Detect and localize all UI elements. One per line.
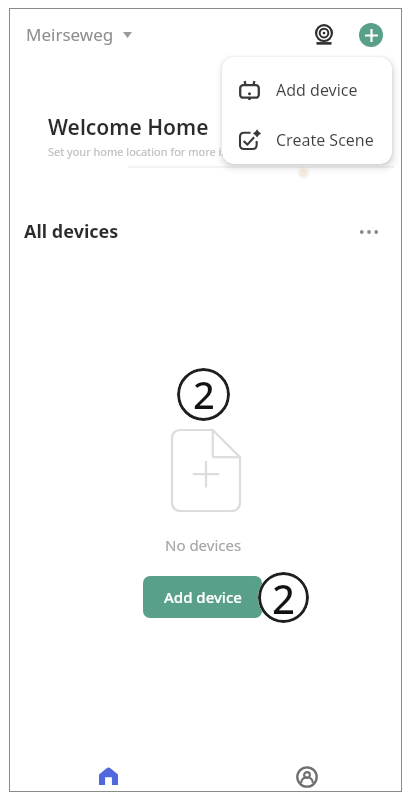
staticText: Welcome Home <box>48 113 209 142</box>
button[interactable]: Add device <box>359 23 383 47</box>
button[interactable]: Add device <box>222 65 392 115</box>
button[interactable]: Scan <box>310 21 338 49</box>
staticText: 2 <box>272 572 295 622</box>
staticText: Add device <box>164 587 242 607</box>
button[interactable]: Profile <box>277 755 337 795</box>
staticText: All devices <box>24 219 119 244</box>
button[interactable]: Home <box>78 754 138 795</box>
staticText: Add device <box>276 79 358 101</box>
button[interactable]: Add device <box>143 576 262 618</box>
staticText: 2 <box>193 368 215 420</box>
staticText: No devices <box>165 535 242 555</box>
staticText: Meirseweg <box>26 23 114 46</box>
button[interactable]: More options <box>354 217 384 247</box>
staticText: Set your home location for more info <box>48 144 239 159</box>
button[interactable]: Meirseweg <box>26 23 132 46</box>
button[interactable]: Welcome Home <box>24 104 384 166</box>
button[interactable]: Create Scene <box>222 115 392 164</box>
staticText: Create Scene <box>276 129 374 151</box>
